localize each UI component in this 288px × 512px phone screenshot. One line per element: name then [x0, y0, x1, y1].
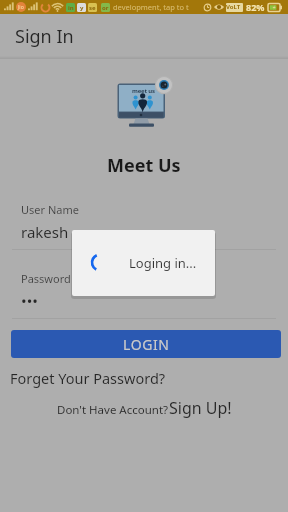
button[interactable]: Forget Your Password? — [10, 368, 166, 388]
staticText: rakesh — [21, 222, 69, 242]
staticText: Jio — [18, 4, 24, 11]
staticText: in — [68, 4, 74, 12]
button[interactable]: Sign Up! — [169, 397, 232, 419]
staticText: development, tap to t — [113, 2, 189, 12]
staticText: Meet Us — [107, 153, 181, 178]
staticText: ••• — [21, 291, 38, 311]
staticText: LOGIN — [123, 335, 170, 354]
staticText: Don't Have Account? — [57, 402, 169, 418]
staticText: VoLTE — [226, 3, 243, 12]
staticText: se — [89, 4, 96, 12]
button[interactable]: LOGIN — [11, 330, 281, 358]
button[interactable]: Sign In — [0, 14, 288, 59]
staticText: 82% — [246, 1, 265, 13]
staticText: Loging in... — [129, 254, 197, 272]
staticText: Password — [21, 271, 71, 286]
staticText: Sign In — [15, 24, 74, 49]
staticText: User Name — [21, 202, 79, 217]
staticText: meet us — [132, 87, 155, 95]
staticText: or — [102, 4, 109, 12]
staticText: y — [80, 4, 84, 12]
